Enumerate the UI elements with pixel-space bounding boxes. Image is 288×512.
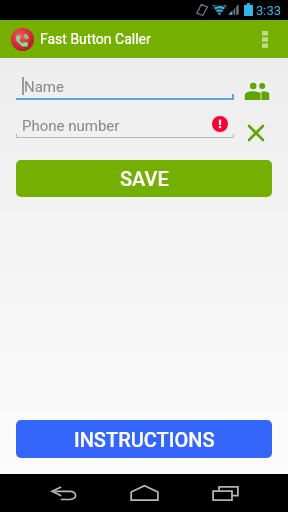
button[interactable]: Home: [106, 474, 182, 512]
button[interactable]: Pick contact: [239, 73, 275, 109]
button[interactable]: SAVE: [16, 160, 272, 197]
button[interactable]: Clear: [243, 120, 269, 146]
staticText: INSTRUCTIONS: [74, 428, 215, 451]
staticText: Fast Button Caller: [40, 31, 151, 47]
button[interactable]: Back: [26, 474, 102, 512]
staticText: SAVE: [120, 167, 169, 190]
button[interactable]: Recents: [187, 474, 263, 512]
button[interactable]: More options: [244, 20, 288, 58]
staticText: Phone number: [22, 117, 120, 135]
button[interactable]: INSTRUCTIONS: [16, 420, 272, 458]
staticText: 3:33: [256, 3, 282, 18]
staticText: Name: [24, 78, 64, 96]
